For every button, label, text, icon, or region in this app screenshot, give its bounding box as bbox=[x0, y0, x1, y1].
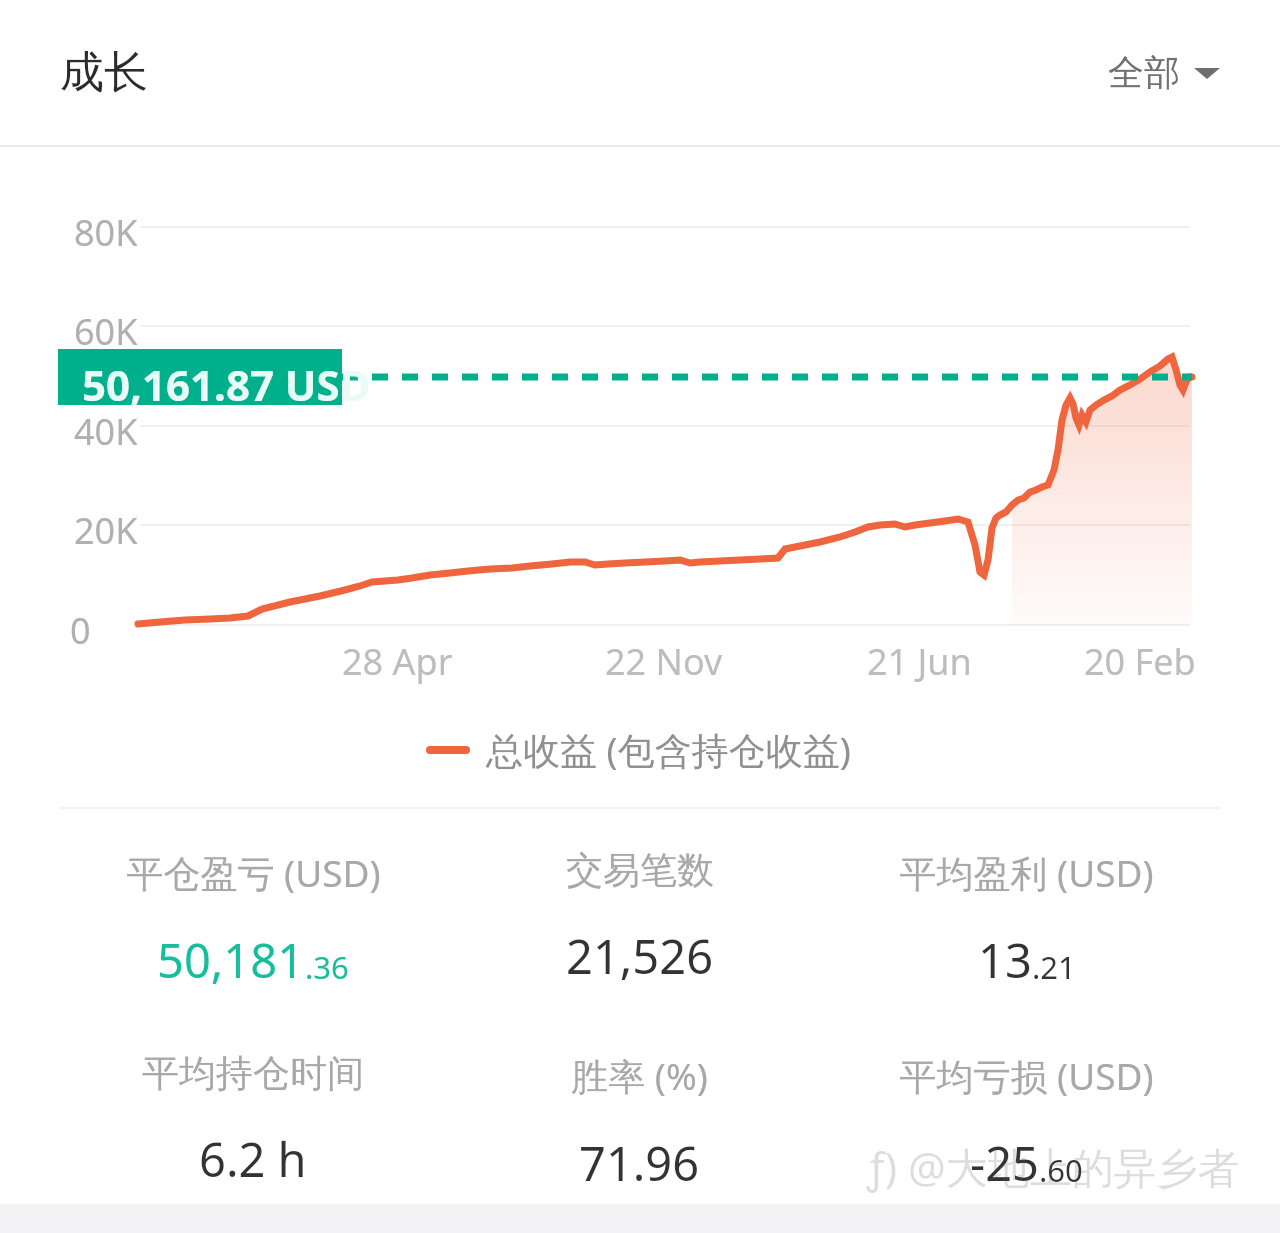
button[interactable]: 交易笔数 bbox=[446, 847, 833, 988]
staticText: 成长 bbox=[60, 45, 148, 100]
staticText: 总收益 (包含持仓收益) bbox=[486, 724, 851, 775]
button[interactable]: 平均持仓时间 bbox=[60, 1050, 446, 1191]
staticText: 28 Apr bbox=[342, 637, 453, 686]
staticText: 50,181 bbox=[157, 928, 305, 992]
staticText: 71.96 bbox=[579, 1131, 700, 1195]
staticText: 22 Nov bbox=[605, 637, 723, 686]
staticText: 60K bbox=[74, 307, 138, 356]
staticText: 50,161.87 USD bbox=[82, 356, 371, 413]
staticText: 80K bbox=[74, 208, 138, 257]
staticText: 胜率 (%) bbox=[571, 1050, 708, 1101]
staticText: -25 bbox=[970, 1131, 1039, 1195]
staticText: 平仓盈亏 (USD) bbox=[126, 847, 381, 898]
staticText: .21 bbox=[1032, 946, 1076, 988]
staticText: 20K bbox=[74, 506, 138, 555]
button[interactable]: 平均盈利 (USD) bbox=[833, 847, 1220, 992]
button[interactable]: 平均亏损 (USD) bbox=[833, 1050, 1220, 1195]
staticText: 平均盈利 (USD) bbox=[899, 847, 1154, 898]
button[interactable]: 全部 bbox=[1100, 40, 1228, 105]
staticText: 交易笔数 bbox=[566, 847, 714, 894]
button[interactable]: 胜率 (%) bbox=[446, 1050, 833, 1195]
staticText: 21,526 bbox=[566, 924, 714, 988]
staticText: 0 bbox=[70, 606, 91, 655]
staticText: 平均亏损 (USD) bbox=[899, 1050, 1154, 1101]
staticText: 40K bbox=[74, 407, 138, 456]
staticText: 全部 bbox=[1108, 50, 1180, 95]
staticText: 21 Jun bbox=[867, 637, 972, 686]
staticText: .36 bbox=[305, 946, 349, 988]
button[interactable]: 平仓盈亏 (USD) bbox=[60, 847, 446, 992]
staticText: 6.2 h bbox=[199, 1127, 307, 1191]
staticText: 平均持仓时间 bbox=[142, 1050, 364, 1097]
staticText: .60 bbox=[1039, 1149, 1083, 1191]
staticText: ƒ) @大地上的异乡者 bbox=[867, 1138, 1240, 1195]
staticText: 13 bbox=[978, 928, 1032, 992]
staticText: 20 Feb bbox=[1084, 637, 1196, 686]
